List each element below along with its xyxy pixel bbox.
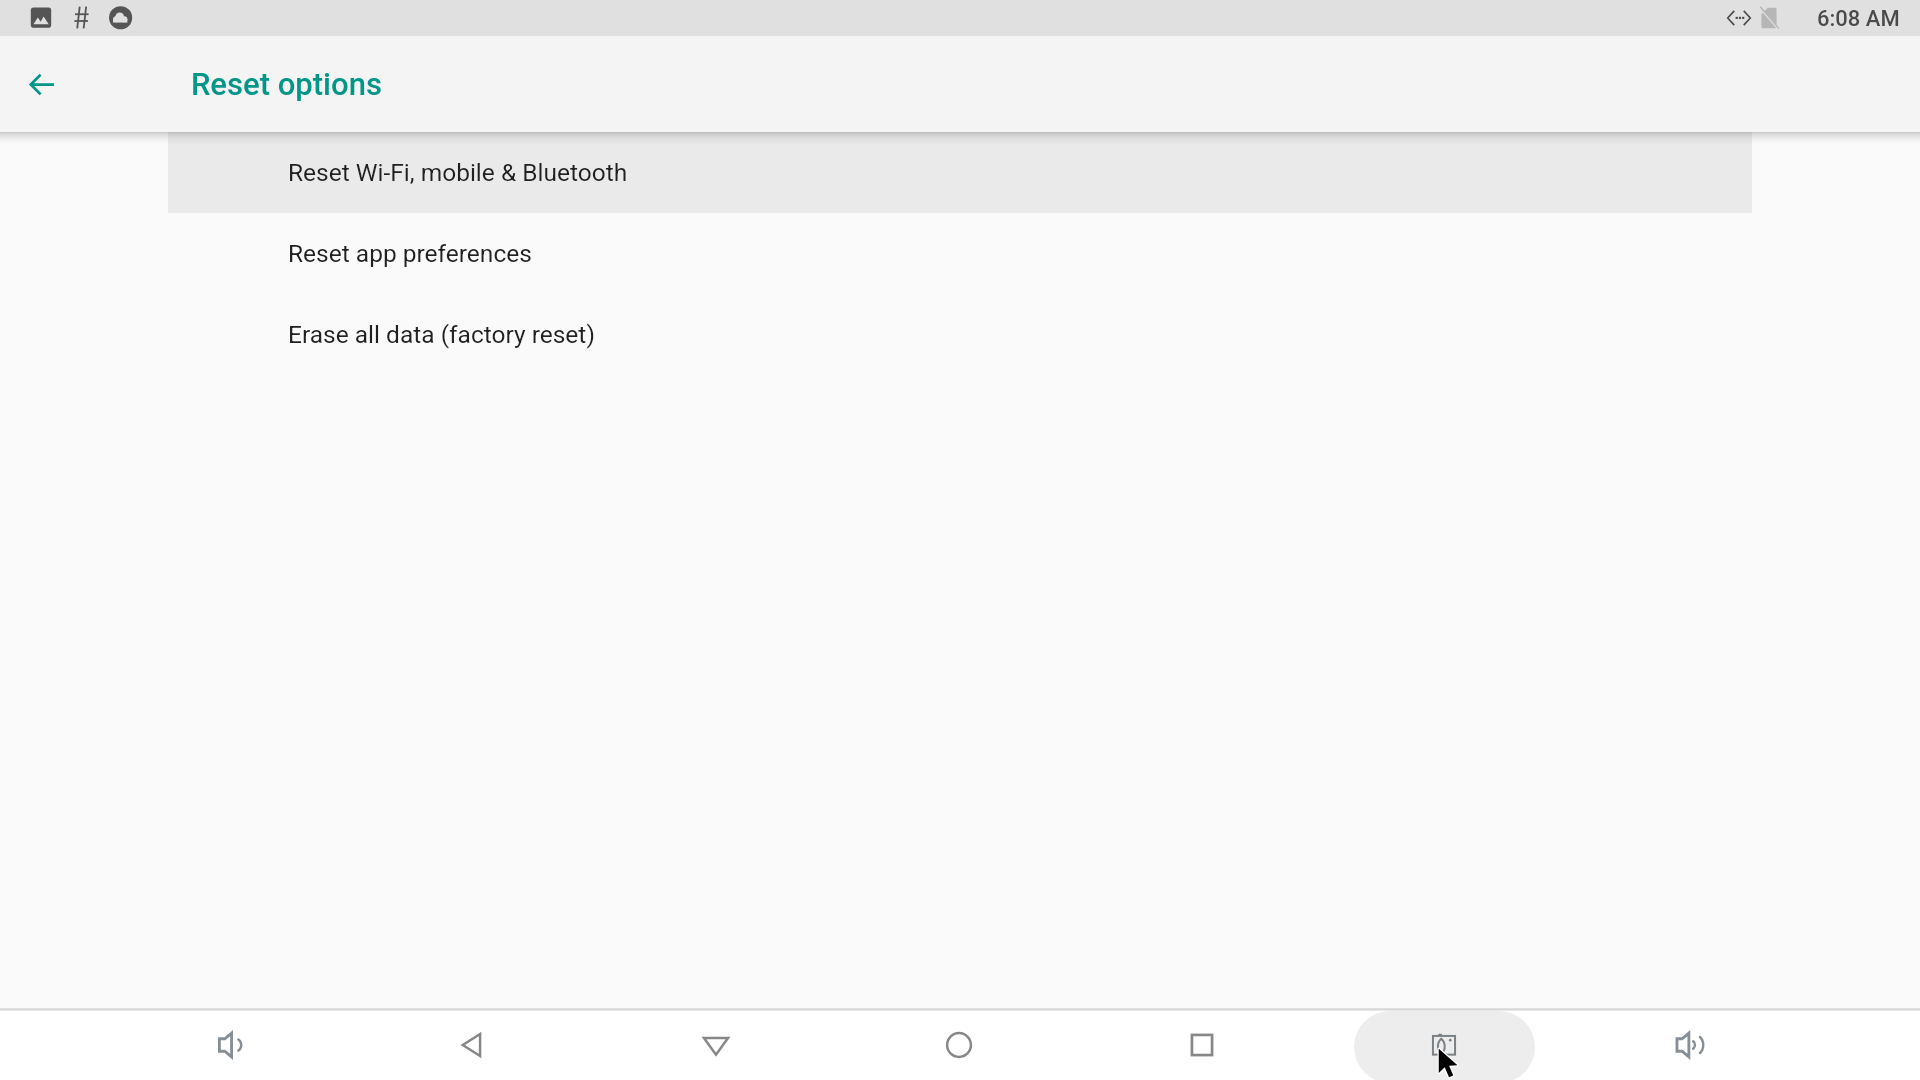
button[interactable]: Recent apps	[1174, 1017, 1230, 1073]
button[interactable]: Reset app preferences	[168, 213, 1752, 294]
staticText: Reset options	[191, 66, 382, 102]
button[interactable]: Volume up	[1662, 1017, 1718, 1073]
button[interactable]: Notifications	[688, 1017, 744, 1073]
button[interactable]: Erase all data (factory reset)	[168, 294, 1752, 375]
staticText: Reset Wi-Fi, mobile & Bluetooth	[288, 158, 628, 187]
button[interactable]: Reset Wi-Fi, mobile & Bluetooth	[168, 132, 1752, 213]
staticText: Reset app preferences	[288, 239, 532, 268]
button[interactable]: Screenshot	[1354, 1011, 1535, 1080]
button[interactable]: Back	[445, 1017, 501, 1073]
button[interactable]: Volume down	[203, 1017, 259, 1073]
button[interactable]: Home	[931, 1017, 987, 1073]
staticText: 6:08 AM	[1817, 6, 1900, 32]
staticText: Erase all data (factory reset)	[288, 320, 595, 349]
button[interactable]: Back	[16, 58, 68, 110]
